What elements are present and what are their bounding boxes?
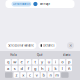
staticText: k — [54, 66, 56, 71]
staticText: diario — [63, 53, 71, 57]
button[interactable]: Qué — [27, 51, 53, 59]
staticText: a — [7, 66, 9, 71]
button[interactable]: c — [27, 72, 33, 78]
button[interactable]: m — [54, 72, 60, 78]
staticText: b — [43, 72, 45, 78]
button[interactable]: h — [39, 66, 45, 71]
button[interactable]: Hola — [0, 51, 27, 59]
button[interactable]: x — [20, 72, 26, 78]
staticText: e — [20, 59, 22, 64]
staticText: Hola — [10, 53, 16, 57]
staticText: t — [35, 59, 36, 64]
button[interactable]: p — [66, 59, 72, 65]
staticText: q — [7, 59, 9, 64]
button[interactable]: y — [39, 59, 45, 65]
staticText: x — [22, 72, 24, 78]
button[interactable]: e — [19, 59, 24, 65]
button[interactable]: Destinatarios — [5, 0, 74, 8]
staticText: g — [34, 66, 36, 71]
staticText: Qué — [37, 53, 43, 57]
staticText: o — [61, 59, 63, 64]
button[interactable]: i — [53, 59, 58, 65]
staticText: Destinatarios — [13, 2, 30, 6]
staticText: h — [41, 66, 43, 71]
button[interactable]: Borrar — [61, 72, 69, 78]
staticText: Seleccionar variable — [8, 44, 34, 47]
staticText: z — [15, 72, 17, 78]
button[interactable]: g — [32, 66, 38, 71]
button[interactable]: Seleccionar variable — [6, 42, 36, 49]
staticText: w — [13, 59, 16, 64]
staticText: u — [48, 59, 50, 64]
button[interactable]: diario — [53, 51, 80, 59]
button[interactable]: v — [34, 72, 40, 78]
button[interactable]: n — [47, 72, 53, 78]
button[interactable]: ñ — [66, 66, 72, 71]
staticText: Detalles — [43, 44, 54, 47]
button[interactable]: Detalles — [38, 42, 56, 49]
staticText: Mensaje — [39, 2, 50, 6]
staticText: i — [55, 59, 56, 64]
button[interactable]: z — [13, 72, 19, 78]
button[interactable]: s — [12, 66, 18, 71]
staticText: ✕ — [69, 43, 72, 48]
staticText: r — [27, 59, 29, 64]
button[interactable]: k — [53, 66, 58, 71]
button[interactable]: r — [25, 59, 31, 65]
staticText: ñ — [68, 66, 70, 71]
button[interactable]: d — [19, 66, 24, 71]
button[interactable]: b — [41, 72, 46, 78]
button[interactable]: w — [12, 59, 18, 65]
staticText: v — [36, 72, 38, 78]
button[interactable]: Mayúsculas — [5, 72, 12, 78]
staticText: p — [68, 59, 70, 64]
staticText: c — [29, 72, 31, 78]
button[interactable]: j — [46, 66, 52, 71]
staticText: m — [55, 72, 59, 78]
staticText: y — [41, 59, 43, 64]
staticText: l — [62, 66, 63, 71]
staticText: f — [28, 66, 29, 71]
button[interactable]: u — [46, 59, 52, 65]
staticText: s — [14, 66, 16, 71]
button[interactable]: t — [32, 59, 38, 65]
staticText: d — [20, 66, 22, 71]
button[interactable]: Cerrar — [67, 42, 74, 49]
staticText: j — [48, 66, 49, 71]
button[interactable]: f — [25, 66, 31, 71]
button[interactable]: l — [59, 66, 65, 71]
button[interactable]: o — [59, 59, 65, 65]
button[interactable]: q — [5, 59, 11, 65]
button[interactable]: a — [5, 66, 11, 71]
staticText: n — [49, 72, 51, 78]
